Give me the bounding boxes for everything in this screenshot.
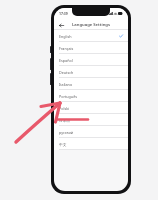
button[interactable]: Back xyxy=(57,21,65,29)
button[interactable]: 日本語 xyxy=(54,114,128,126)
staticText: Italiano xyxy=(59,82,73,87)
button[interactable]: Español xyxy=(54,54,128,66)
staticText: 日本語 xyxy=(59,118,71,123)
staticText: English xyxy=(59,34,72,39)
staticText: 17:39 xyxy=(59,11,68,16)
button[interactable]: Polski xyxy=(54,102,128,114)
button[interactable]: 中文 xyxy=(54,138,128,150)
staticText: Français xyxy=(59,46,74,51)
button[interactable]: Português xyxy=(54,90,128,102)
button[interactable]: Deutsch xyxy=(54,66,128,78)
staticText: 中文 xyxy=(59,142,67,147)
button[interactable]: Italiano xyxy=(54,78,128,90)
button[interactable]: English xyxy=(54,30,128,42)
staticText: Español xyxy=(59,58,73,63)
button[interactable]: Français xyxy=(54,42,128,54)
button[interactable]: русский xyxy=(54,126,128,138)
staticText: Deutsch xyxy=(59,70,74,75)
staticText: Polski xyxy=(59,106,70,111)
staticText: Language Settings xyxy=(72,22,111,28)
staticText: Português xyxy=(59,94,77,99)
staticText: русский xyxy=(59,130,74,135)
